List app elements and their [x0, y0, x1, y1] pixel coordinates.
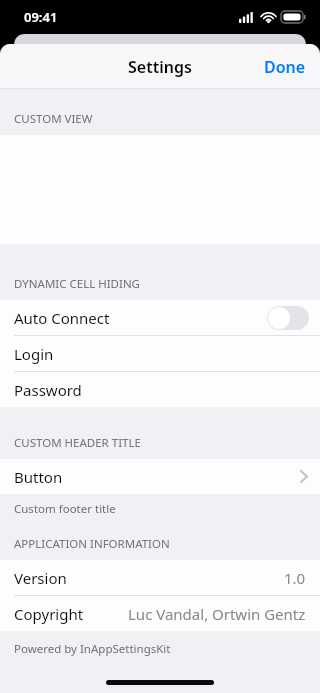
staticText: Version: [14, 568, 67, 588]
button[interactable]: Copyright: [0, 596, 320, 631]
button[interactable]: Auto Connect toggle: [267, 306, 309, 330]
staticText: Luc Vandal, Ortwin Gentz: [128, 604, 306, 624]
staticText: Login: [14, 344, 54, 364]
button[interactable]: Login: [0, 336, 320, 371]
button[interactable]: Auto Connect: [0, 300, 320, 335]
button[interactable]: Done: [250, 46, 320, 88]
staticText: CUSTOM HEADER TITLE: [14, 435, 141, 451]
button[interactable]: Password: [0, 372, 320, 407]
staticText: Copyright: [14, 604, 84, 624]
staticText: Custom footer title: [14, 501, 116, 517]
staticText: Password: [14, 380, 82, 400]
button[interactable]: Version: [0, 560, 320, 595]
staticText: Button: [14, 467, 63, 487]
staticText: 09:41: [24, 8, 58, 26]
button[interactable]: Button: [0, 459, 320, 494]
staticText: Done: [264, 56, 306, 78]
staticText: CUSTOM VIEW: [14, 111, 93, 127]
staticText: DYNAMIC CELL HIDING: [14, 276, 140, 292]
staticText: APPLICATION INFORMATION: [14, 536, 170, 552]
staticText: Auto Connect: [14, 308, 110, 328]
staticText: Settings: [128, 56, 192, 78]
staticText: 1.0: [284, 568, 306, 588]
staticText: Powered by InAppSettingsKit: [14, 641, 171, 657]
